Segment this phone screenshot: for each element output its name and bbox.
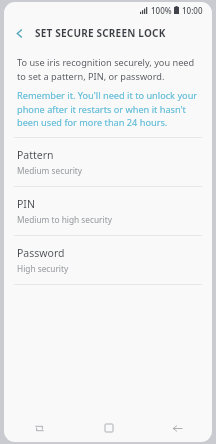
staticText: Remember it. You'll need it to unlock yo… — [17, 89, 199, 128]
staticText: Medium security — [17, 165, 83, 176]
staticText: SET SECURE SCREEN LOCK — [35, 26, 166, 40]
button[interactable]: Password — [4, 236, 212, 284]
button[interactable]: Recents — [4, 414, 74, 442]
staticText: Password — [17, 246, 65, 260]
staticText: High security — [17, 263, 69, 274]
staticText: 100% — [151, 5, 172, 16]
staticText: Pattern — [17, 148, 54, 162]
staticText: To use iris recognition securely, you ne… — [17, 56, 199, 82]
button[interactable]: Back — [143, 414, 212, 442]
staticText: Medium to high security — [17, 214, 112, 225]
button[interactable]: PIN — [4, 187, 212, 235]
button[interactable]: Back — [4, 18, 34, 48]
button[interactable]: Pattern — [4, 138, 212, 186]
button[interactable]: Home — [74, 414, 143, 442]
staticText: 10:00 — [182, 5, 203, 16]
staticText: PIN — [17, 197, 35, 211]
